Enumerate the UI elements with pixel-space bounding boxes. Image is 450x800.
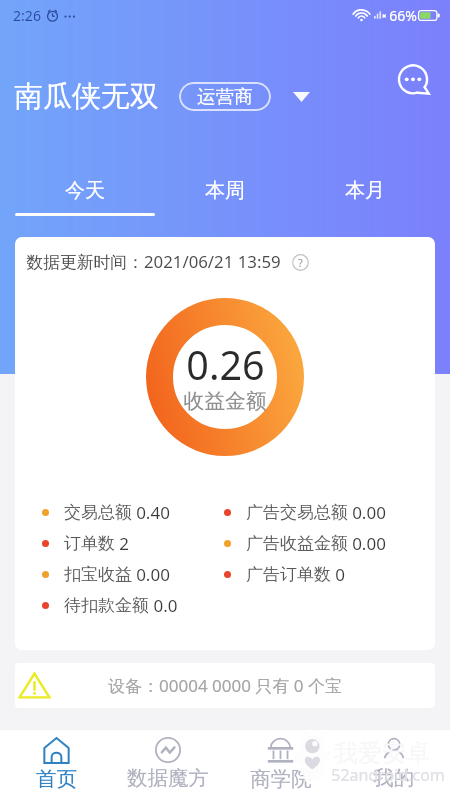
staticText: 本周 — [205, 178, 245, 203]
staticText: 0 — [335, 563, 345, 586]
button[interactable]: 说明 — [290, 252, 310, 272]
button[interactable]: 数据魔方 — [112, 730, 224, 800]
staticText: 0.0 — [153, 594, 178, 617]
staticText: 广告收益金额 — [246, 533, 348, 554]
staticText: 设备：00004 0000 只有 0 个宝 — [108, 674, 342, 697]
staticText: 本月 — [345, 178, 385, 203]
staticText: 南瓜侠无双 — [14, 78, 159, 115]
staticText: 52android.com — [331, 764, 445, 786]
staticText: 广告订单数 — [246, 564, 331, 585]
button[interactable]: 运营商 — [179, 82, 271, 111]
staticText: 我的 — [373, 765, 414, 791]
staticText: 今天 — [65, 178, 105, 203]
staticText: 数据魔方 — [127, 765, 209, 791]
button[interactable]: 今天 — [15, 160, 155, 220]
staticText: 收益金额 — [183, 388, 267, 414]
staticText: 交易总额 — [64, 502, 132, 523]
staticText: 我爱安卓 — [334, 738, 430, 768]
staticText: 0.26 — [186, 338, 265, 392]
button[interactable]: 本周 — [155, 160, 295, 220]
staticText: 订单数 — [64, 533, 115, 554]
staticText: 0.00 — [352, 501, 386, 524]
button[interactable]: 商学院 — [224, 730, 337, 800]
button[interactable]: 展开选择 — [288, 84, 314, 110]
staticText: 广告交易总额 — [246, 502, 348, 523]
button[interactable]: 本月 — [295, 160, 435, 220]
button[interactable]: 设备：00004 0000 只有 0 个宝 — [15, 663, 435, 708]
staticText: 2:26 — [13, 6, 41, 25]
staticText: 0.00 — [136, 563, 170, 586]
staticText: 数据更新时间：2021/06/21 13:59 — [26, 250, 281, 273]
staticText: 0.00 — [352, 532, 386, 555]
staticText: ? — [298, 255, 303, 270]
staticText: 首页 — [36, 766, 77, 792]
button[interactable]: 在线客服 — [393, 60, 435, 102]
staticText: 待扣款金额 — [64, 595, 149, 616]
staticText: 运营商 — [197, 85, 253, 108]
staticText: 商学院 — [250, 766, 312, 792]
staticText: 2 — [119, 532, 129, 555]
staticText: 66% — [389, 6, 417, 25]
staticText: 0.40 — [136, 501, 170, 524]
button[interactable]: 我的 — [337, 730, 450, 800]
staticText: 扣宝收益 — [64, 564, 132, 585]
button[interactable]: 首页 — [0, 730, 112, 800]
